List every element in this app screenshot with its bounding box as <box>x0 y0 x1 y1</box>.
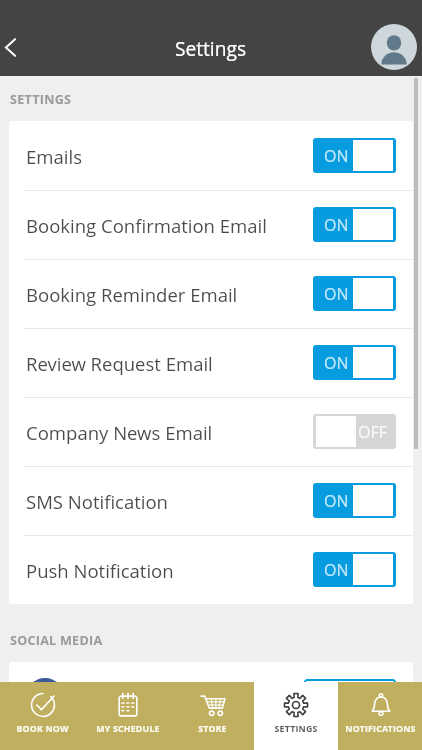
button[interactable] <box>304 679 396 714</box>
staticText: ON <box>324 145 349 167</box>
button[interactable]: Emails <box>9 121 413 190</box>
button[interactable]: SETTINGS <box>254 682 338 750</box>
button[interactable] <box>304 731 396 750</box>
button[interactable]: Company News Email <box>9 397 413 466</box>
button[interactable]: OFF <box>313 414 396 449</box>
button[interactable]: ON <box>313 138 396 173</box>
staticText: Booking Reminder Email <box>26 282 238 307</box>
staticText: NOTIFICATIONS <box>345 723 416 735</box>
button[interactable]: Push Notification <box>9 535 413 604</box>
staticText: SMS Notification <box>26 489 168 514</box>
staticText: BOOK NOW <box>16 723 69 735</box>
staticText: SETTINGS <box>274 723 318 735</box>
button[interactable]: ON <box>313 276 396 311</box>
staticText: f <box>41 682 50 712</box>
staticText: ON <box>324 559 349 581</box>
button[interactable]: ON <box>313 207 396 242</box>
button[interactable]: ON <box>313 483 396 518</box>
button[interactable]: f <box>9 662 413 731</box>
button[interactable]: ON <box>313 345 396 380</box>
button[interactable]: Back <box>0 18 30 76</box>
button[interactable]: NOTIFICATIONS <box>338 682 422 750</box>
staticText: ON <box>324 490 349 512</box>
staticText: ON <box>324 283 349 305</box>
staticText: SETTINGS <box>10 91 72 108</box>
staticText: Emails <box>26 144 82 169</box>
staticText: Facebook <box>76 685 159 710</box>
button[interactable]: SMS Notification <box>9 466 413 535</box>
button[interactable]: BOOK NOW <box>0 682 85 750</box>
staticText: Review Request Email <box>26 351 213 376</box>
staticText: Booking Confirmation Email <box>26 213 267 238</box>
staticText: Push Notification <box>26 558 174 583</box>
button[interactable]: MY SCHEDULE <box>85 682 170 750</box>
staticText: SOCIAL MEDIA <box>10 632 103 649</box>
button[interactable]: Booking Reminder Email <box>9 259 413 328</box>
button[interactable]: Review Request Email <box>9 328 413 397</box>
button[interactable]: f <box>9 731 413 750</box>
staticText: ON <box>324 214 349 236</box>
staticText: Twitter <box>76 731 136 750</box>
button[interactable]: Profile <box>371 24 417 70</box>
button[interactable]: ON <box>313 552 396 587</box>
staticText: STORE <box>198 723 227 735</box>
button[interactable]: Booking Confirmation Email <box>9 190 413 259</box>
button[interactable]: STORE <box>170 682 254 750</box>
staticText: OFF <box>358 421 387 443</box>
staticText: Settings <box>175 35 247 61</box>
staticText: ON <box>324 352 349 374</box>
staticText: MY SCHEDULE <box>96 723 160 735</box>
staticText: f <box>41 731 50 750</box>
staticText: Company News Email <box>26 420 213 445</box>
